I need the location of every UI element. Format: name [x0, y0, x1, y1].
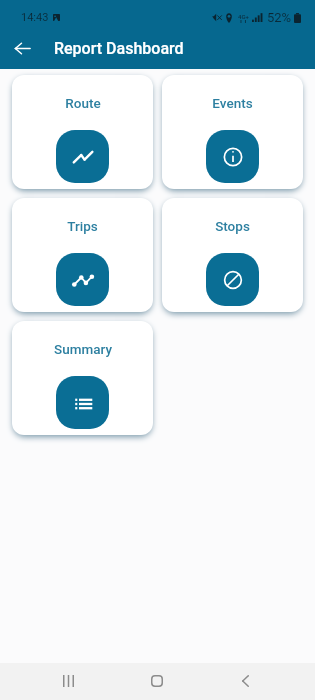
button[interactable]: Back: [6, 32, 38, 64]
staticText: Summary: [54, 341, 112, 357]
staticText: 4G+: [238, 13, 249, 20]
button[interactable]: Home: [134, 662, 179, 699]
staticText: Route: [65, 95, 101, 111]
staticText: Report Dashboard: [54, 39, 184, 58]
button[interactable]: Back: [223, 662, 268, 699]
button[interactable]: Events: [162, 75, 303, 189]
button[interactable]: Stops: [162, 198, 303, 312]
button[interactable]: Summary: [12, 321, 153, 435]
staticText: 52%: [267, 10, 292, 25]
staticText: 14:43: [21, 11, 49, 24]
button[interactable]: Trips: [12, 198, 153, 312]
staticText: Trips: [67, 218, 98, 234]
button[interactable]: Route: [12, 75, 153, 189]
button[interactable]: Recent apps: [46, 662, 91, 699]
staticText: Stops: [215, 218, 250, 234]
staticText: Events: [212, 95, 253, 111]
